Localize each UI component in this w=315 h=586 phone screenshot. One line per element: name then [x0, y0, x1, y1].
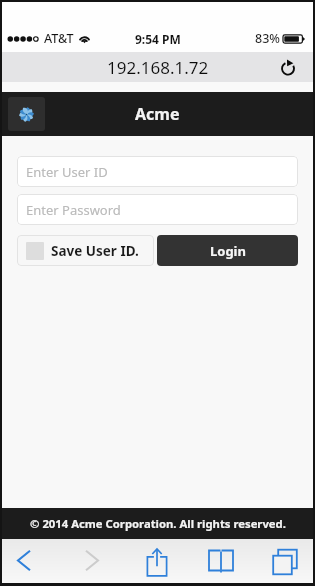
- button[interactable]: Bookmarks: [199, 539, 243, 583]
- button[interactable]: Enter Password: [17, 194, 298, 225]
- staticText: Login: [210, 242, 246, 260]
- button[interactable]: Tabs: [261, 539, 305, 583]
- staticText: Enter Password: [26, 201, 121, 219]
- button[interactable]: Save User ID.: [17, 235, 154, 266]
- button[interactable]: Enter User ID: [17, 156, 298, 187]
- staticText: Enter User ID: [26, 163, 108, 181]
- button[interactable]: Forward: [70, 539, 114, 583]
- staticText: Acme: [135, 103, 180, 125]
- button[interactable]: Login: [157, 235, 298, 266]
- button[interactable]: Acme logo: [8, 97, 45, 131]
- staticText: Save User ID.: [51, 242, 139, 260]
- staticText: AT&T: [44, 30, 74, 47]
- button[interactable]: Reload: [276, 55, 300, 79]
- staticText: © 2014 Acme Corporation. All rights rese…: [30, 516, 286, 531]
- staticText: 9:54 PM: [135, 31, 181, 47]
- button[interactable]: Back: [2, 539, 46, 583]
- staticText: 192.168.1.72: [107, 56, 209, 79]
- staticText: 83%: [255, 30, 280, 47]
- button[interactable]: Share: [135, 539, 179, 583]
